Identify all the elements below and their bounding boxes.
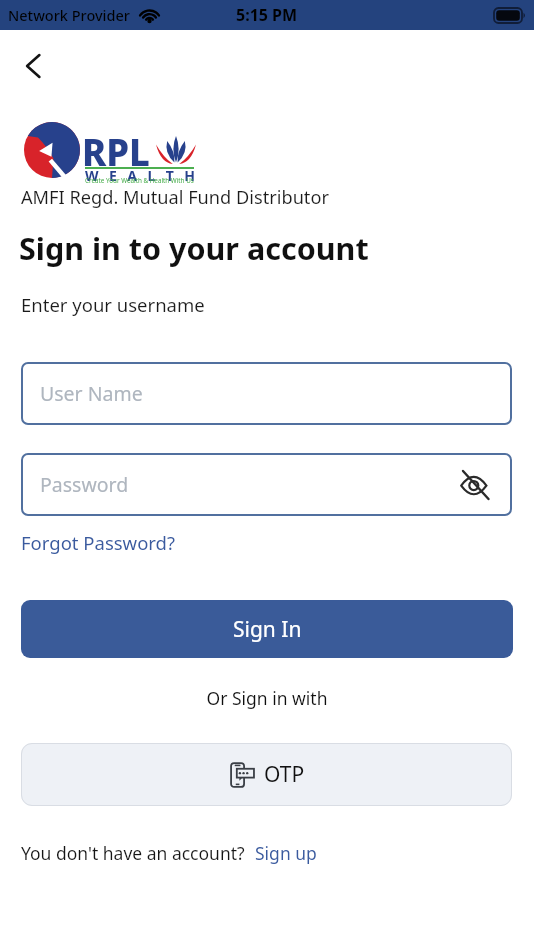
staticText: W E A L T H: [85, 166, 199, 185]
button[interactable]: Forgot Password?: [21, 530, 176, 555]
staticText: AMFI Regd. Mutual Fund Distributor: [21, 185, 329, 210]
staticText: Enter your username: [21, 292, 205, 317]
staticText: User Name: [40, 380, 143, 407]
button[interactable]: Sign In: [21, 600, 513, 658]
staticText: Sign In: [233, 615, 302, 644]
button[interactable]: User Name: [21, 362, 512, 425]
staticText: You don't have an account?: [21, 841, 245, 865]
staticText: OTP: [264, 760, 305, 789]
staticText: Sign in to your account: [19, 227, 369, 269]
staticText: RPL: [82, 127, 150, 177]
button[interactable]: [17, 53, 45, 79]
staticText: Or Sign in with: [0, 686, 534, 710]
staticText: Create Your Wealth & Health With Us: [85, 176, 194, 185]
button[interactable]: OTP: [21, 743, 512, 806]
button[interactable]: Sign up: [255, 841, 317, 865]
button[interactable]: Password: [21, 453, 512, 516]
staticText: Password: [40, 471, 129, 498]
staticText: 5:15 PM: [236, 4, 298, 26]
staticText: Network Provider: [8, 5, 130, 25]
